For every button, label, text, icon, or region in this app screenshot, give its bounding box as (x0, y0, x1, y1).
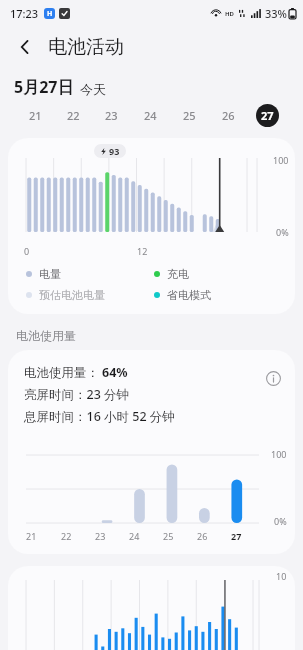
staticText: 电量 (39, 267, 61, 281)
staticText: 电池活动 (48, 35, 124, 59)
button[interactable]: 10 (8, 566, 295, 650)
staticText: 息屏时间：16 小时 52 分钟 (24, 408, 175, 425)
staticText: 10 (276, 570, 287, 582)
staticText: 23 (95, 530, 106, 542)
button[interactable]: 25 (170, 98, 209, 132)
staticText: 5月27日 (14, 76, 74, 98)
staticText: 25 (163, 530, 174, 542)
staticText: 21 (26, 530, 37, 542)
staticText: 0 (24, 245, 30, 257)
staticText: 0% (274, 515, 287, 527)
button[interactable]: 27 (248, 98, 287, 132)
staticText: 22 (67, 108, 80, 123)
staticText: 省电模式 (167, 288, 211, 302)
staticText: 预估电池电量 (39, 288, 105, 302)
staticText: 12 (137, 245, 148, 257)
staticText: 充电 (167, 267, 189, 281)
staticText: 25 (183, 108, 196, 123)
staticText: 21 (29, 108, 42, 123)
button[interactable]: 24 (131, 98, 170, 132)
staticText: 26 (222, 108, 235, 123)
staticText: 26 (197, 530, 208, 542)
staticText: 24 (144, 108, 157, 123)
button[interactable]: Info (259, 364, 287, 392)
staticText: HD (225, 10, 234, 18)
staticText: 今天 (80, 81, 106, 97)
staticText: 33% (265, 6, 287, 21)
staticText: 93 (109, 145, 120, 157)
staticText: 22 (61, 530, 72, 542)
staticText: 100 (271, 448, 287, 460)
staticText: 23 (105, 108, 118, 123)
staticText: H (47, 9, 53, 19)
button[interactable]: 26 (209, 98, 248, 132)
button[interactable]: 电池使用量： (8, 350, 295, 554)
button[interactable]: Back (8, 30, 42, 64)
staticText: 电池使用量 (16, 328, 76, 343)
button[interactable]: 23 (92, 98, 131, 132)
staticText: 64% (102, 364, 128, 381)
staticText: 电池使用量： (24, 365, 99, 381)
staticText: 100 (273, 154, 289, 166)
button[interactable]: 100 (8, 138, 295, 314)
button[interactable]: 21 (16, 98, 54, 132)
staticText: 17:23 (10, 6, 39, 21)
staticText: 27 (231, 530, 242, 542)
button[interactable]: 22 (54, 98, 92, 132)
staticText: 27 (261, 108, 274, 123)
staticText: 24 (129, 530, 140, 542)
staticText: 0% (276, 226, 289, 238)
staticText: 亮屏时间：23 分钟 (24, 386, 130, 403)
